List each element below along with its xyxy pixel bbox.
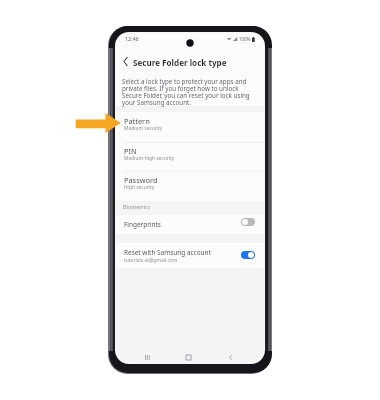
staticText: Medium-high security bbox=[124, 155, 175, 162]
button[interactable]: Password bbox=[116, 171, 264, 201]
button[interactable]: Enabled bbox=[241, 251, 255, 259]
button[interactable]: Back bbox=[223, 350, 237, 361]
staticText: 12:46 bbox=[125, 35, 139, 42]
staticText: Secure Folder lock type bbox=[133, 57, 227, 68]
staticText: PIN bbox=[124, 146, 137, 156]
staticText: Select a lock type to protect your apps … bbox=[122, 77, 250, 107]
staticText: Biometrics bbox=[123, 203, 150, 210]
button[interactable]: Reset with Samsung account bbox=[116, 243, 264, 268]
button[interactable]: Home bbox=[181, 350, 195, 361]
button[interactable]: Recent apps bbox=[140, 350, 154, 361]
staticText: 100% bbox=[239, 36, 251, 42]
staticText: Pattern bbox=[124, 116, 150, 126]
other: Pointer bbox=[74, 111, 122, 135]
staticText: High security bbox=[124, 184, 155, 191]
button[interactable]: Disabled bbox=[241, 218, 255, 226]
button[interactable]: PIN bbox=[116, 142, 264, 172]
staticText: Password bbox=[124, 175, 158, 185]
button[interactable]: Navigate up bbox=[118, 54, 133, 69]
staticText: tutorials.at@gmail.com bbox=[124, 257, 178, 264]
staticText: Fingerprints bbox=[124, 220, 161, 229]
staticText: Reset with Samsung account bbox=[124, 248, 211, 257]
button[interactable]: Pattern bbox=[116, 112, 264, 142]
button[interactable]: Fingerprints bbox=[116, 215, 264, 234]
staticText: Medium security bbox=[124, 125, 163, 132]
